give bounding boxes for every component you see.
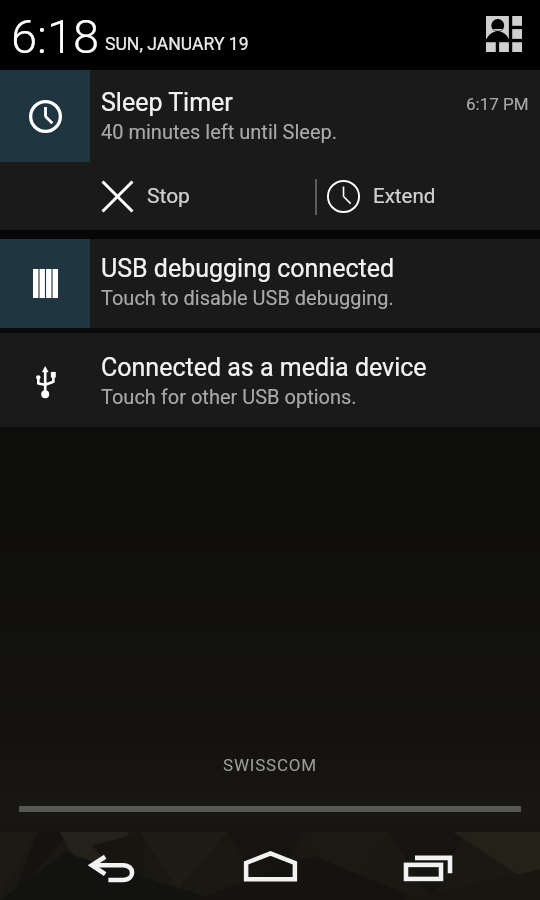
staticText: 40 minutes left until Sleep. — [101, 120, 338, 143]
button[interactable]: Back — [90, 835, 136, 900]
button[interactable]: Sleep Timer — [0, 70, 540, 162]
button[interactable]: Stop — [0, 162, 315, 230]
button[interactable]: Home — [244, 832, 297, 900]
staticText: Sleep Timer — [101, 88, 233, 117]
button[interactable]: Extend — [317, 162, 540, 230]
button[interactable]: Connected as a media device — [0, 333, 540, 427]
staticText: SWISSCOM — [0, 755, 540, 775]
staticText: Touch for other USB options. — [101, 385, 357, 408]
staticText: 6:17 PM — [466, 94, 529, 114]
staticText: Touch to disable USB debugging. — [101, 286, 394, 309]
staticText: Stop — [147, 184, 190, 209]
staticText: Extend — [373, 184, 436, 208]
staticText: USB debugging connected — [101, 254, 395, 283]
button[interactable]: USB debugging connected — [0, 239, 540, 328]
button[interactable]: Collapse notification shade — [0, 797, 540, 821]
staticText: SUN, JANUARY 19 — [105, 34, 249, 55]
button[interactable]: Quick settings — [478, 8, 530, 60]
staticText: 6:18 — [11, 9, 100, 64]
staticText: Connected as a media device — [101, 353, 427, 382]
button[interactable]: Recent apps — [404, 834, 454, 900]
